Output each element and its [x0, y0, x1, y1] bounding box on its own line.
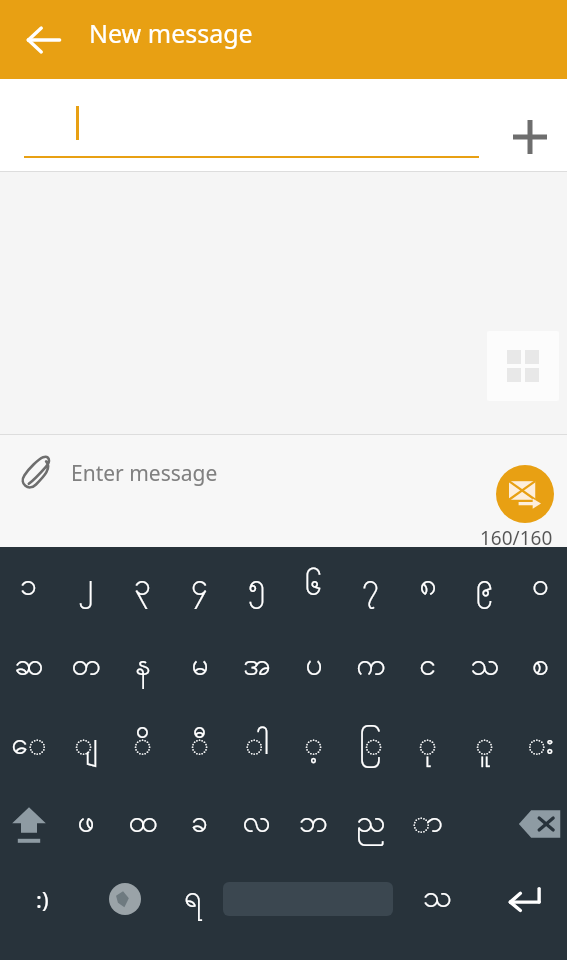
staticText: ါ [245, 724, 269, 768]
button[interactable]: ၈ [399, 547, 456, 627]
button[interactable]: မ [171, 627, 228, 707]
staticText: ၈ [419, 565, 437, 609]
button[interactable]: Back [18, 14, 70, 66]
staticText: ဘ [299, 802, 328, 846]
staticText: 160/160 [480, 525, 553, 551]
staticText: တ [71, 645, 101, 689]
button[interactable]: ည [342, 785, 399, 863]
staticText: င [419, 645, 436, 689]
button[interactable]: Add recipient [502, 109, 558, 165]
button[interactable]: :) [0, 863, 85, 935]
button[interactable]: း [513, 707, 567, 785]
staticText: က [356, 645, 386, 689]
button[interactable]: ၃ [114, 547, 171, 627]
button[interactable]: င [399, 627, 456, 707]
staticText: ၄ [191, 565, 208, 609]
button[interactable]: လ [228, 785, 285, 863]
staticText: ၀ [532, 565, 549, 609]
staticText: :) [36, 884, 49, 914]
staticText: ၉ [476, 565, 493, 609]
staticText: ၁ [20, 565, 37, 609]
button[interactable]: ျ [57, 707, 114, 785]
button[interactable]: ၄ [171, 547, 228, 627]
button[interactable]: သ [456, 627, 513, 707]
staticText: သ [423, 877, 453, 921]
button[interactable]: Backspace [513, 785, 567, 863]
staticText: ေ [11, 724, 47, 768]
staticText: ီ [190, 724, 209, 768]
button[interactable]: ထ [114, 785, 171, 863]
button[interactable]: ု [399, 707, 456, 785]
button[interactable]: ရ [165, 863, 220, 935]
staticText: ခ [191, 802, 208, 846]
button[interactable]: ိ [114, 707, 171, 785]
button[interactable]: ဖ [57, 785, 114, 863]
button[interactable]: ၆ [285, 547, 342, 627]
button[interactable]: ၁ [0, 547, 57, 627]
staticText: အ [243, 645, 271, 689]
button[interactable] [220, 863, 395, 935]
staticText: ု [418, 724, 437, 768]
staticText: ည [356, 802, 386, 846]
staticText: ပ [305, 645, 323, 689]
button[interactable]: Enter message [71, 459, 218, 488]
button[interactable]: ါ [228, 707, 285, 785]
staticText: ြ [359, 724, 383, 768]
staticText: ၅ [248, 565, 265, 609]
staticText: သ [470, 645, 500, 689]
button[interactable]: Grid view [487, 331, 559, 401]
staticText: ျ [74, 724, 98, 768]
button[interactable]: အ [228, 627, 285, 707]
button[interactable]: ီ [171, 707, 228, 785]
staticText: ထ [128, 802, 158, 846]
staticText: ဖ [77, 802, 95, 846]
staticText: ိ [133, 724, 152, 768]
staticText: ာ [412, 802, 443, 846]
staticText: ၂ [78, 565, 93, 609]
staticText: ့ [304, 724, 323, 768]
button[interactable]: က [342, 627, 399, 707]
button[interactable]: ့ [285, 707, 342, 785]
staticText: မ [191, 645, 209, 689]
button[interactable]: ဘ [285, 785, 342, 863]
button[interactable]: ၉ [456, 547, 513, 627]
button[interactable]: စ [513, 627, 567, 707]
button[interactable]: ၅ [228, 547, 285, 627]
button[interactable]: ြ [342, 707, 399, 785]
staticText: း [527, 724, 554, 768]
button[interactable]: သ [395, 863, 480, 935]
button[interactable]: ၇ [342, 547, 399, 627]
button[interactable]: ူ [456, 707, 513, 785]
button[interactable]: ေ [0, 707, 57, 785]
staticText: ၆ [305, 565, 322, 609]
staticText: ရ [184, 877, 202, 921]
button[interactable]: Send [496, 465, 554, 523]
button[interactable]: တ [57, 627, 114, 707]
staticText: ၇ [362, 565, 379, 609]
staticText: န [135, 645, 151, 689]
button[interactable]: ဆ [0, 627, 57, 707]
button[interactable]: Change language [85, 863, 165, 935]
button[interactable]: န [114, 627, 171, 707]
button[interactable]: Attach [8, 445, 64, 501]
staticText: ူ [475, 724, 494, 768]
staticText: ၃ [134, 565, 151, 609]
staticText: ဆ [14, 645, 44, 689]
button[interactable]: ခ [171, 785, 228, 863]
button[interactable]: ၂ [57, 547, 114, 627]
button[interactable]: Shift [0, 785, 57, 863]
button[interactable]: ပ [285, 627, 342, 707]
staticText: New message [89, 16, 253, 50]
staticText: စ [532, 645, 549, 689]
button[interactable]: ၀ [513, 547, 567, 627]
staticText: လ [242, 802, 271, 846]
button[interactable]: ာ [399, 785, 456, 863]
button[interactable]: Enter [480, 863, 567, 935]
